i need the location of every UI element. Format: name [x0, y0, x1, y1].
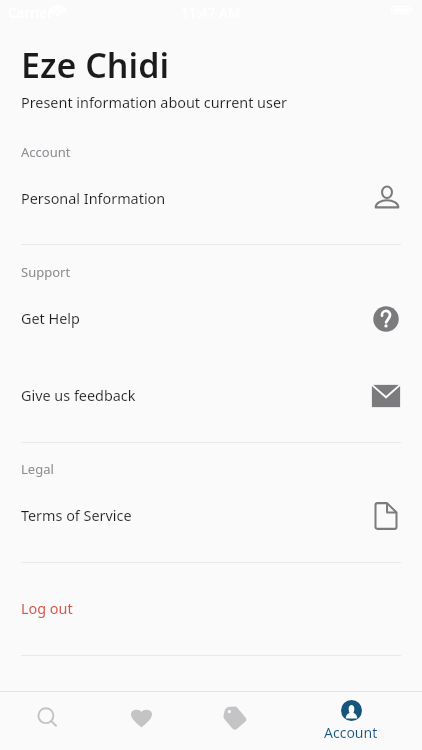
staticText: Account	[324, 723, 378, 742]
staticText: Legal	[21, 460, 54, 478]
button[interactable]: Personal Information	[0, 184, 422, 214]
staticText: Eze Chidi	[21, 42, 170, 88]
button[interactable]: Get Help	[0, 304, 422, 334]
button[interactable]: Give us feedback	[0, 381, 422, 411]
button[interactable]: Terms of Service	[0, 501, 422, 531]
button[interactable]: Account	[282, 692, 422, 750]
staticText: Account	[21, 143, 71, 161]
staticText: Terms of Service	[21, 506, 132, 526]
staticText: Present information about current user	[21, 93, 287, 113]
button[interactable]: Log out	[0, 590, 422, 628]
staticText: Get Help	[21, 309, 80, 329]
staticText: Support	[21, 263, 71, 281]
button[interactable]: Search	[0, 692, 94, 750]
staticText: Give us feedback	[21, 386, 136, 406]
staticText: Log out	[21, 599, 73, 619]
staticText: Personal Information	[21, 189, 166, 209]
button[interactable]: Offers	[188, 692, 282, 750]
button[interactable]: Favorites	[94, 692, 188, 750]
